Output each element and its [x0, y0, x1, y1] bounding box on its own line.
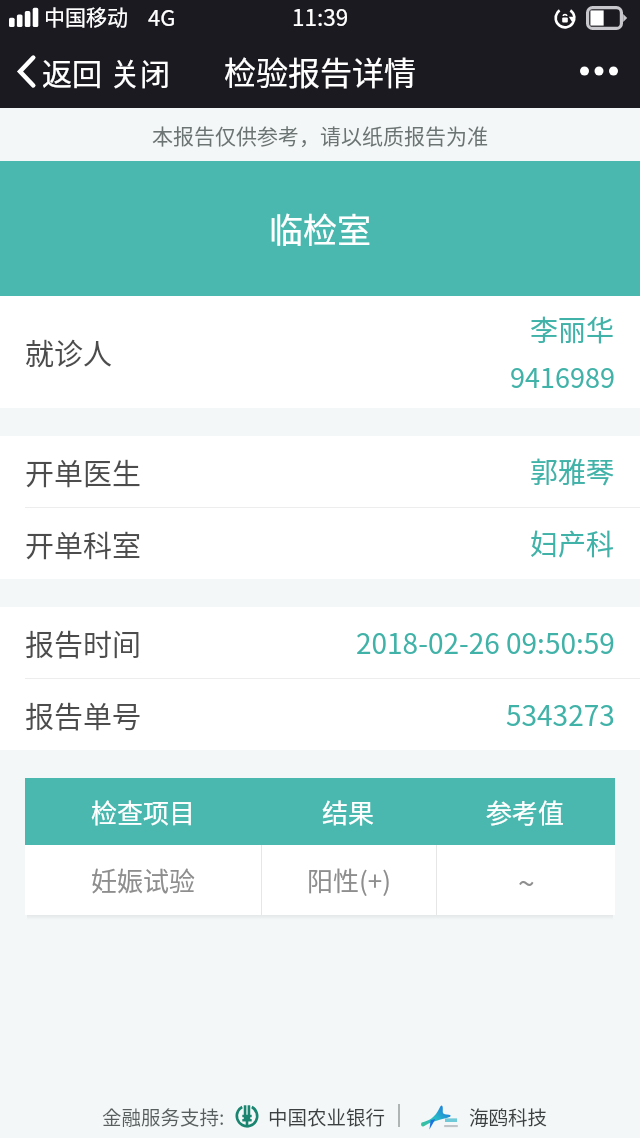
staticText: 阳性(+) — [307, 861, 392, 899]
button[interactable]: 关闭 — [102, 44, 178, 99]
button[interactable]: More options — [570, 57, 628, 85]
staticText: 返回 — [42, 50, 102, 93]
button[interactable]: 开单科室 — [0, 508, 640, 579]
staticText: 临检室 — [269, 204, 371, 253]
staticText: 妊娠试验 — [91, 861, 196, 899]
staticText: 海鸥科技 — [469, 1102, 548, 1130]
other: Rotation lock — [553, 6, 577, 30]
staticText: 5343273 — [506, 694, 615, 735]
button[interactable]: 报告单号 — [0, 679, 640, 750]
staticText: 9416989 — [510, 357, 615, 396]
staticText: 报告时间 — [25, 622, 142, 664]
button[interactable]: 返回 — [10, 44, 110, 99]
staticText: 李丽华 — [530, 309, 615, 350]
button[interactable]: 妊娠试验 — [25, 845, 615, 915]
staticText: 中国农业银行 — [268, 1102, 386, 1130]
staticText: 关闭 — [110, 50, 170, 93]
staticText: 妇产科 — [530, 523, 615, 564]
staticText: 检查项目 — [91, 793, 196, 831]
staticText: 就诊人 — [25, 331, 113, 373]
staticText: 开单医生 — [25, 451, 142, 493]
staticText: 检验报告详情 — [224, 48, 417, 94]
staticText: 金融服务支持: — [102, 1102, 225, 1130]
staticText: 结果 — [322, 793, 375, 831]
button[interactable]: 就诊人 — [0, 296, 640, 408]
staticText: 郭雅琴 — [530, 451, 615, 492]
staticText: 报告单号 — [25, 694, 142, 736]
other: Battery — [586, 6, 628, 30]
other: Signal strength — [9, 7, 39, 27]
staticText: 本报告仅供参考，请以纸质报告为准 — [152, 120, 488, 150]
button[interactable]: 开单医生 — [0, 436, 640, 507]
staticText: 中国移动 — [44, 1, 128, 31]
staticText: ~ — [518, 859, 535, 902]
staticText: 开单科室 — [25, 523, 142, 565]
staticText: 4G — [148, 0, 176, 32]
staticText: 2018-02-26 09:50:59 — [356, 622, 615, 663]
staticText: 11:39 — [292, 0, 349, 33]
staticText: 参考值 — [486, 793, 565, 831]
button[interactable]: 报告时间 — [0, 607, 640, 678]
